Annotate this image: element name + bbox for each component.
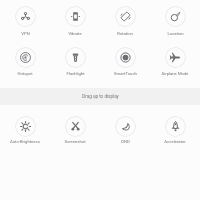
button[interactable]: Hotspot	[0, 0, 50, 76]
button[interactable]: Drag up to display	[0, 88, 200, 105]
button[interactable]: SmartTouch	[100, 0, 150, 76]
staticText: Rotation	[117, 31, 133, 36]
staticText: Location	[167, 31, 184, 36]
staticText: Auto-Brightness	[10, 139, 40, 144]
staticText: Airplane Mode	[161, 71, 189, 76]
button[interactable]: Flashlight	[50, 0, 100, 76]
button[interactable]: Airplane Mode	[150, 0, 200, 76]
button[interactable]: Auto-Brightness	[0, 0, 50, 144]
staticText: Screenshot	[64, 139, 86, 144]
staticText: Vibrate	[68, 31, 82, 36]
staticText: Hotspot	[17, 71, 33, 76]
staticText: VPN	[21, 31, 30, 36]
staticText: DND	[121, 139, 130, 144]
staticText: Accelerator	[164, 139, 186, 144]
button[interactable]: VPN	[0, 0, 50, 36]
button[interactable]: Vibrate	[50, 0, 100, 36]
button[interactable]: Location	[150, 0, 200, 36]
staticText: Flashlight	[66, 71, 85, 76]
button[interactable]: Screenshot	[50, 0, 100, 144]
button[interactable]: DND	[100, 0, 150, 144]
staticText: SmartTouch	[114, 71, 137, 76]
button[interactable]: Rotation	[100, 0, 150, 36]
staticText: Drag up to display	[82, 94, 119, 99]
button[interactable]: Accelerator	[150, 0, 200, 144]
